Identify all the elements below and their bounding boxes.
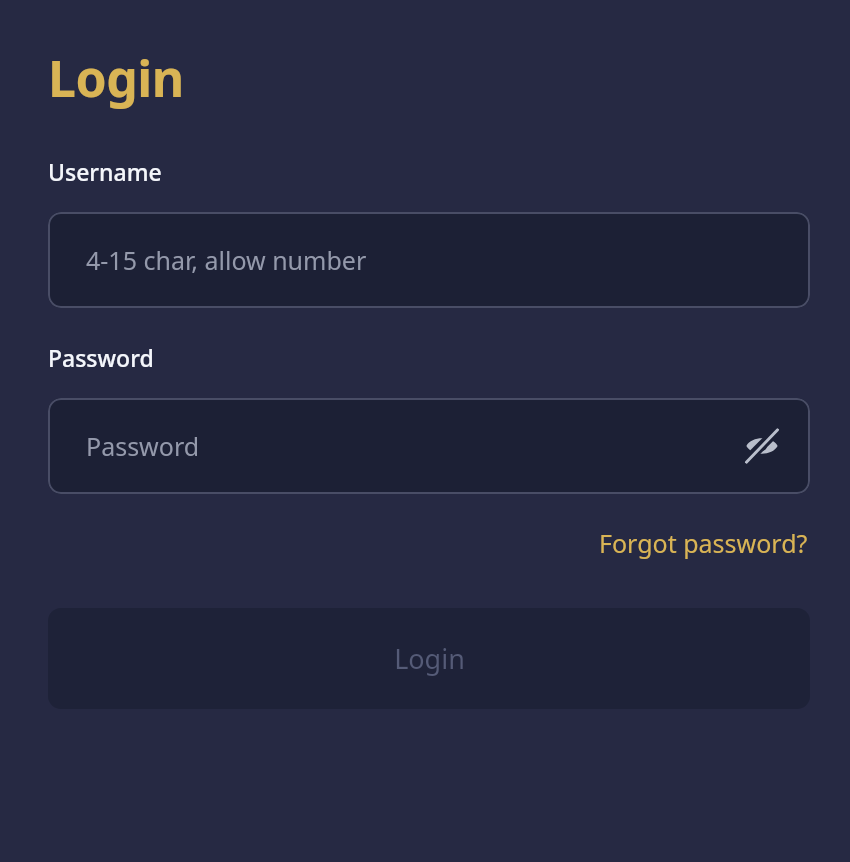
button[interactable]: Show password — [738, 422, 786, 470]
staticText: Password — [86, 429, 200, 463]
staticText: Forgot password? — [599, 526, 808, 560]
button[interactable]: Login — [48, 608, 810, 709]
button[interactable]: Forgot password? — [597, 522, 810, 564]
button[interactable]: 4-15 char, allow number — [48, 212, 810, 308]
staticText: Username — [48, 156, 162, 187]
staticText: Login — [48, 44, 184, 112]
staticText: Password — [48, 342, 154, 373]
staticText: 4-15 char, allow number — [86, 243, 367, 277]
button[interactable]: Password — [48, 398, 810, 494]
staticText: Login — [394, 640, 465, 677]
